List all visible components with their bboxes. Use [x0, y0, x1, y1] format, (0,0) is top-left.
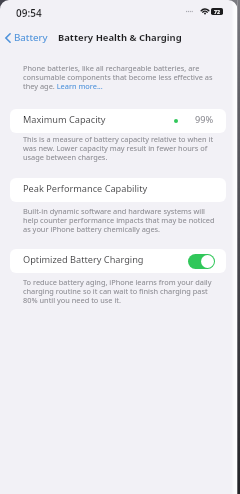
button[interactable]: Optimized Battery Charging: [10, 249, 226, 273]
staticText: This is a measure of battery capacity re…: [23, 134, 216, 163]
staticText: Phone batteries, like all rechargeable b…: [23, 63, 216, 91]
button[interactable]: Battery: [3, 29, 50, 46]
button[interactable]: Peak Performance Capability: [10, 178, 226, 202]
staticText: Maximum Capacity: [23, 113, 106, 126]
button[interactable]: Optimized Battery Charging: [188, 254, 215, 269]
staticText: 09:54: [16, 6, 42, 20]
staticText: Built-in dynamic software and hardware s…: [23, 206, 216, 235]
staticText: 99%: [195, 113, 214, 126]
staticText: Battery Health & Charging: [58, 31, 182, 44]
staticText: To reduce battery aging, iPhone learns f…: [23, 277, 216, 306]
staticText: Peak Performance Capability: [23, 182, 148, 195]
staticText: Optimized Battery Charging: [23, 253, 144, 266]
staticText: Battery: [14, 31, 48, 44]
button[interactable]: Maximum Capacity: [10, 109, 226, 133]
staticText: 72: [214, 8, 220, 15]
